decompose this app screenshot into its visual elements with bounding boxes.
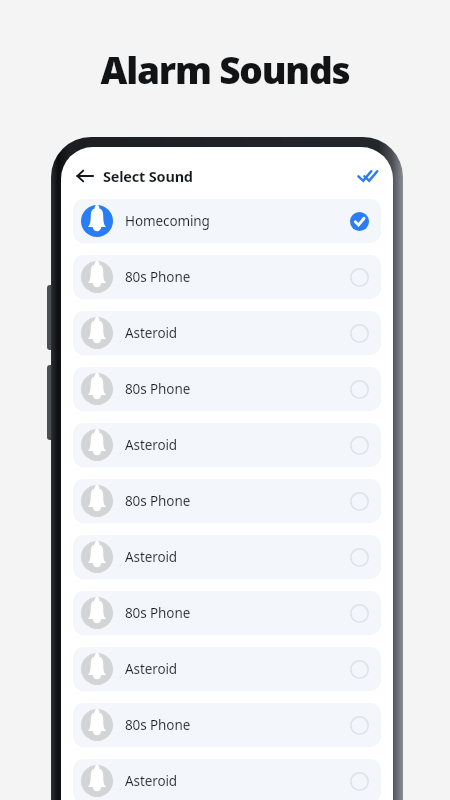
- button[interactable]: Asteroid: [73, 535, 381, 579]
- staticText: Asteroid: [125, 436, 178, 454]
- button[interactable]: 80s Phone: [73, 367, 381, 411]
- staticText: 80s Phone: [125, 716, 191, 734]
- button[interactable]: Asteroid: [73, 311, 381, 355]
- staticText: 80s Phone: [125, 492, 191, 510]
- button[interactable]: Asteroid: [73, 647, 381, 691]
- staticText: 80s Phone: [125, 268, 191, 286]
- button[interactable]: Select all: [354, 162, 382, 190]
- staticText: Asteroid: [125, 324, 178, 342]
- staticText: 80s Phone: [125, 380, 191, 398]
- button[interactable]: 80s Phone: [73, 255, 381, 299]
- staticText: 80s Phone: [125, 604, 191, 622]
- staticText: Select Sound: [103, 166, 193, 186]
- button[interactable]: Homecoming: [73, 199, 381, 243]
- button[interactable]: Back: [72, 163, 98, 189]
- staticText: Asteroid: [125, 548, 178, 566]
- staticText: Asteroid: [125, 660, 178, 678]
- staticText: Asteroid: [125, 772, 178, 790]
- button[interactable]: 80s Phone: [73, 591, 381, 635]
- staticText: Homecoming: [125, 212, 210, 230]
- button[interactable]: 80s Phone: [73, 703, 381, 747]
- button[interactable]: Asteroid: [73, 759, 381, 800]
- button[interactable]: Asteroid: [73, 423, 381, 467]
- button[interactable]: 80s Phone: [73, 479, 381, 523]
- staticText: Alarm Sounds: [0, 44, 450, 94]
